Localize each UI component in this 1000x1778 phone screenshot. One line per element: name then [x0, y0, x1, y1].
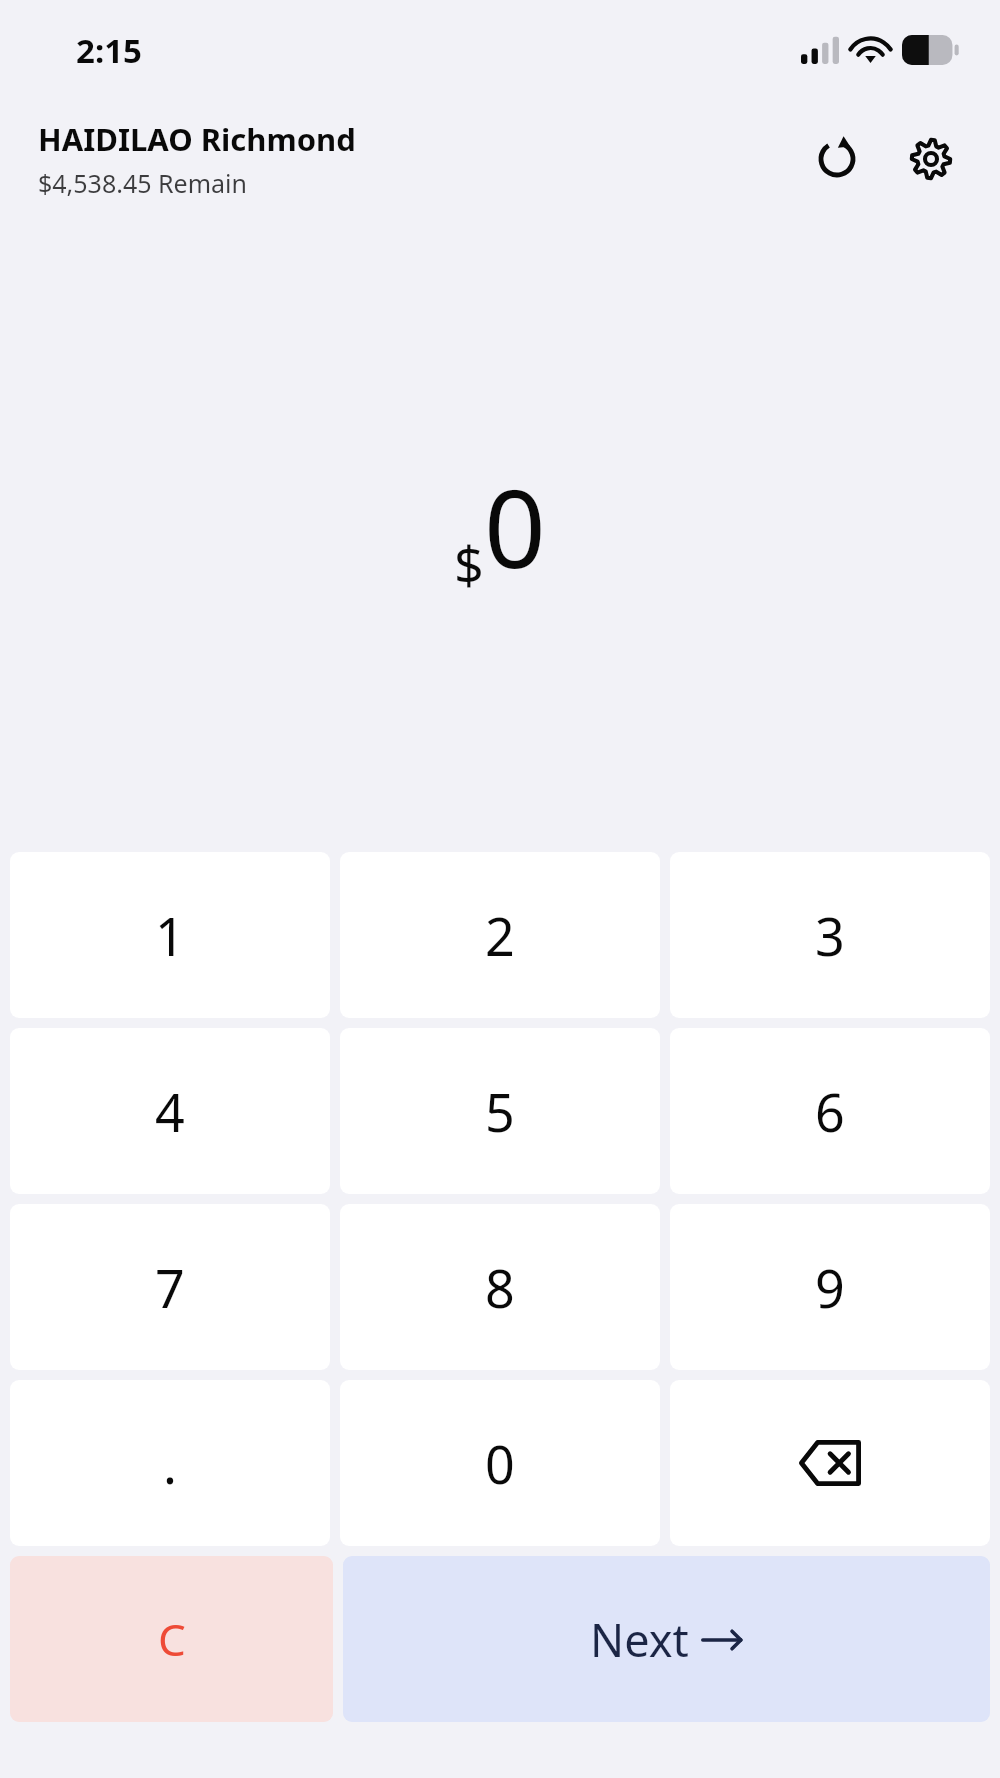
button[interactable]: Settings — [892, 120, 970, 198]
staticText: $ — [454, 529, 484, 600]
staticText: . — [163, 1428, 177, 1499]
staticText: 2:15 — [76, 28, 142, 73]
button[interactable]: . — [10, 1380, 330, 1546]
staticText: HAIDILAO Richmond — [38, 118, 356, 160]
staticText: 4 — [155, 1076, 185, 1147]
staticText: 3 — [815, 900, 845, 971]
button[interactable]: 6 — [670, 1028, 990, 1194]
button[interactable]: 4 — [10, 1028, 330, 1194]
staticText: 0 — [484, 453, 546, 600]
button[interactable]: 2 — [340, 852, 660, 1018]
staticText: 5 — [485, 1076, 515, 1147]
button[interactable]: 1 — [10, 852, 330, 1018]
button[interactable]: Next — [343, 1556, 990, 1722]
staticText: $4,538.45 Remain — [38, 166, 247, 200]
staticText: 8 — [485, 1252, 515, 1323]
button[interactable]: 8 — [340, 1204, 660, 1370]
staticText: 7 — [155, 1252, 185, 1323]
button[interactable]: 9 — [670, 1204, 990, 1370]
staticText: 2 — [485, 900, 515, 971]
button[interactable]: 3 — [670, 852, 990, 1018]
staticText: 9 — [815, 1252, 845, 1323]
staticText: 6 — [815, 1076, 845, 1147]
staticText: C — [158, 1609, 186, 1669]
staticText: 0 — [485, 1428, 515, 1499]
button[interactable]: Refresh — [798, 120, 876, 198]
button[interactable]: 7 — [10, 1204, 330, 1370]
button[interactable]: C — [10, 1556, 333, 1722]
button[interactable]: 5 — [340, 1028, 660, 1194]
button[interactable]: Backspace — [670, 1380, 990, 1546]
staticText: Next — [590, 1609, 689, 1670]
staticText: 1 — [155, 900, 185, 971]
button[interactable]: 0 — [340, 1380, 660, 1546]
